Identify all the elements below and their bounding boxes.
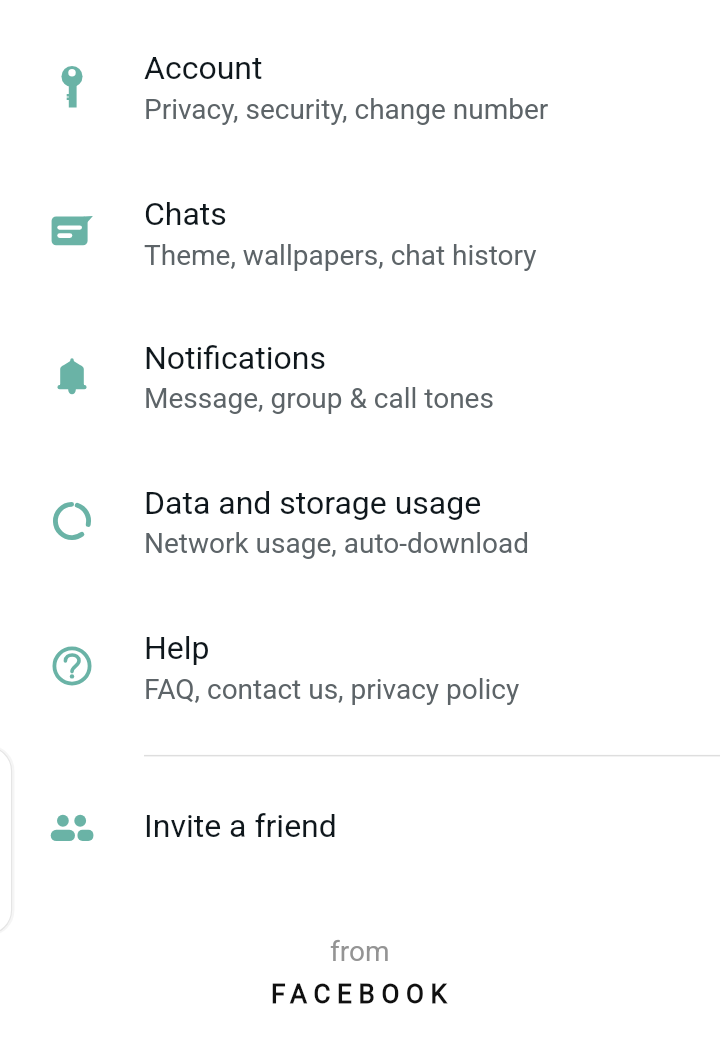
button[interactable]: Notifications xyxy=(0,303,720,425)
button[interactable]: Chats xyxy=(0,159,720,281)
staticText: Network usage, auto-download xyxy=(144,527,530,560)
staticText: Message, group & call tones xyxy=(144,382,494,415)
other: Data and storage usage xyxy=(40,489,104,553)
other: Help xyxy=(40,634,104,698)
button[interactable]: Account xyxy=(0,13,720,135)
button[interactable]: Data and storage usage xyxy=(0,448,720,570)
staticText: Privacy, security, change number xyxy=(144,93,549,126)
staticText: Chats xyxy=(144,195,227,233)
other: Invite a friend xyxy=(40,796,104,860)
staticText: FAQ, contact us, privacy policy xyxy=(144,673,520,706)
staticText: Invite a friend xyxy=(144,807,337,845)
staticText: Account xyxy=(144,49,263,87)
staticText: Notifications xyxy=(144,339,326,377)
staticText: Help xyxy=(144,629,210,667)
staticText: FACEBOOK xyxy=(271,979,454,1009)
other: Notifications xyxy=(40,345,104,409)
staticText: Data and storage usage xyxy=(144,484,482,522)
staticText: Theme, wallpapers, chat history xyxy=(144,239,537,272)
other: Account xyxy=(40,55,104,119)
other: Chats xyxy=(40,199,104,263)
staticText: from xyxy=(330,935,390,968)
button[interactable]: Invite a friend xyxy=(0,767,720,877)
button[interactable]: Help xyxy=(0,592,720,714)
